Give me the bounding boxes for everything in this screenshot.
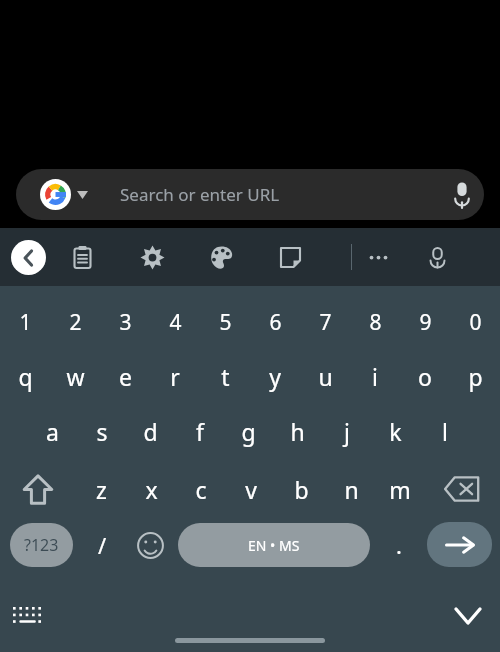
button[interactable]: Backspace xyxy=(430,462,494,516)
staticText: 7 xyxy=(319,308,332,337)
staticText: j xyxy=(344,416,350,447)
staticText: k xyxy=(389,416,402,447)
staticText: g xyxy=(241,416,256,447)
button[interactable]: d xyxy=(126,404,175,459)
button[interactable]: j xyxy=(322,404,371,459)
button[interactable]: y xyxy=(250,350,300,403)
button[interactable]: o xyxy=(400,350,450,403)
staticText: l xyxy=(442,416,448,447)
button[interactable]: 5 xyxy=(200,296,250,349)
staticText: r xyxy=(170,361,180,392)
button[interactable]: Emoji xyxy=(128,523,172,567)
staticText: a xyxy=(46,416,59,447)
staticText: . xyxy=(396,530,402,560)
button[interactable]: 2 xyxy=(50,296,100,349)
button[interactable]: Google xyxy=(16,169,484,220)
button[interactable]: i xyxy=(350,350,400,403)
button[interactable]: 0 xyxy=(450,296,500,349)
staticText: 2 xyxy=(69,308,82,337)
staticText: w xyxy=(66,361,85,392)
button[interactable]: p xyxy=(450,350,500,403)
button[interactable]: Back xyxy=(11,240,46,275)
staticText: / xyxy=(98,530,107,560)
staticText: 9 xyxy=(419,308,432,337)
staticText: n xyxy=(344,474,359,505)
button[interactable]: 7 xyxy=(300,296,350,349)
button[interactable]: t xyxy=(200,350,250,403)
button[interactable]: r xyxy=(150,350,200,403)
staticText: d xyxy=(143,416,158,447)
button[interactable]: f xyxy=(175,404,224,459)
button[interactable]: ?123 xyxy=(10,523,73,567)
staticText: 1 xyxy=(19,308,32,337)
button[interactable]: v xyxy=(226,462,276,516)
staticText: p xyxy=(468,361,483,392)
staticText: f xyxy=(196,416,204,447)
staticText: 4 xyxy=(169,308,182,337)
button[interactable]: h xyxy=(273,404,322,459)
staticText: 0 xyxy=(469,308,482,337)
other: Google xyxy=(40,179,71,210)
button[interactable]: e xyxy=(100,350,150,403)
button[interactable]: q xyxy=(0,350,50,403)
button[interactable]: u xyxy=(300,350,350,403)
staticText: i xyxy=(372,361,378,392)
button[interactable]: g xyxy=(224,404,273,459)
staticText: b xyxy=(294,474,309,505)
button[interactable]: a xyxy=(28,404,77,459)
button[interactable]: 1 xyxy=(0,296,50,349)
button[interactable]: Clipboard xyxy=(63,238,101,276)
staticText: 8 xyxy=(369,308,382,337)
staticText: o xyxy=(418,361,432,392)
button[interactable]: 6 xyxy=(250,296,300,349)
button[interactable]: x xyxy=(126,462,176,516)
staticText: EN • MS xyxy=(248,536,300,555)
button[interactable]: l xyxy=(420,404,469,459)
button[interactable]: Settings xyxy=(133,238,171,276)
button[interactable]: Themes xyxy=(202,238,240,276)
button[interactable]: . xyxy=(378,523,420,567)
staticText: y xyxy=(269,361,281,392)
staticText: v xyxy=(245,474,257,505)
button[interactable]: n xyxy=(326,462,376,516)
staticText: Search or enter URL xyxy=(120,183,280,206)
button[interactable]: 4 xyxy=(150,296,200,349)
button[interactable]: c xyxy=(176,462,226,516)
button[interactable]: 9 xyxy=(400,296,450,349)
button[interactable]: m xyxy=(376,462,424,516)
staticText: u xyxy=(318,361,333,392)
button[interactable]: 3 xyxy=(100,296,150,349)
button[interactable]: / xyxy=(80,523,124,567)
staticText: 6 xyxy=(269,308,282,337)
button[interactable]: EN • MS xyxy=(178,523,370,567)
staticText: m xyxy=(389,474,411,505)
staticText: 3 xyxy=(119,308,132,337)
button[interactable]: Sticker xyxy=(271,238,309,276)
button[interactable]: Shift xyxy=(6,462,70,516)
staticText: 5 xyxy=(219,308,232,337)
staticText: ?123 xyxy=(24,534,59,556)
button[interactable]: Change keyboard xyxy=(12,604,42,630)
button[interactable]: b xyxy=(276,462,326,516)
button[interactable]: z xyxy=(76,462,126,516)
button[interactable]: Voice input xyxy=(418,238,456,276)
button[interactable]: Hide keyboard xyxy=(448,598,488,634)
button[interactable]: Enter xyxy=(427,522,492,567)
button[interactable]: w xyxy=(50,350,100,403)
button[interactable]: Voice search xyxy=(444,177,480,213)
staticText: x xyxy=(145,474,158,505)
button[interactable]: 8 xyxy=(350,296,400,349)
staticText: q xyxy=(18,361,33,392)
staticText: c xyxy=(195,474,207,505)
staticText: z xyxy=(96,474,107,505)
staticText: t xyxy=(221,361,230,392)
button[interactable]: k xyxy=(371,404,420,459)
button[interactable]: More options xyxy=(359,238,397,276)
button[interactable]: s xyxy=(77,404,126,459)
staticText: s xyxy=(96,416,108,447)
staticText: h xyxy=(290,416,305,447)
staticText: e xyxy=(119,361,132,392)
